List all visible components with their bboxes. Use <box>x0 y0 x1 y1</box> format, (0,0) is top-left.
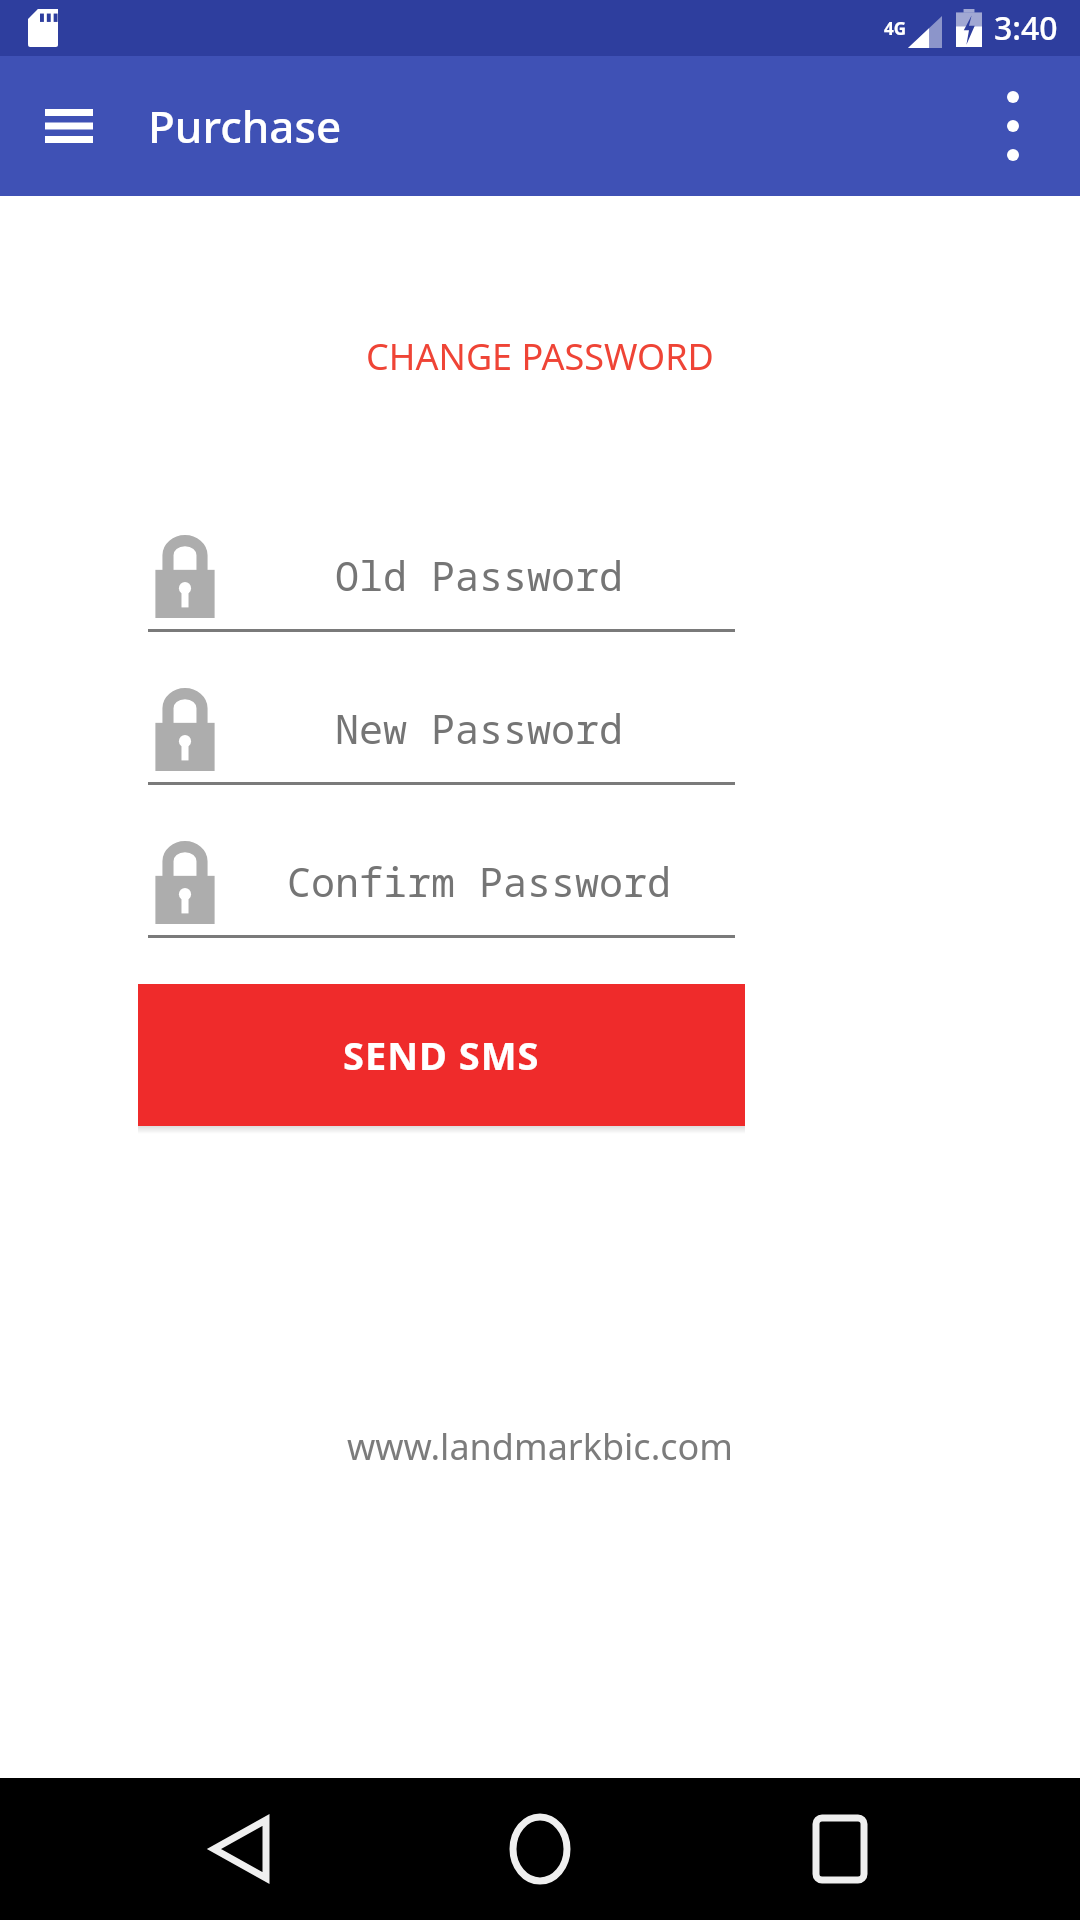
staticText: CHANGE PASSWORD <box>0 332 1080 381</box>
button[interactable]: Recent apps <box>780 1789 900 1909</box>
button[interactable]: Open navigation menu <box>24 81 114 171</box>
staticText: SEND SMS <box>343 1029 540 1081</box>
staticText: 4G <box>884 17 907 40</box>
staticText: New Password <box>335 701 623 755</box>
button[interactable]: Confirm Password <box>148 827 735 935</box>
button[interactable]: More options <box>968 81 1058 171</box>
staticText: Old Password <box>335 548 623 602</box>
staticText: Confirm Password <box>287 854 671 908</box>
button[interactable]: Back <box>180 1789 300 1909</box>
button[interactable]: New Password <box>148 674 735 782</box>
staticText: 3:40 <box>994 6 1058 50</box>
button[interactable]: Home <box>480 1789 600 1909</box>
staticText: www.landmarkbic.com <box>0 1422 1080 1471</box>
staticText: Purchase <box>148 96 342 156</box>
button[interactable]: Old Password <box>148 521 735 629</box>
button[interactable]: SEND SMS <box>138 984 745 1126</box>
